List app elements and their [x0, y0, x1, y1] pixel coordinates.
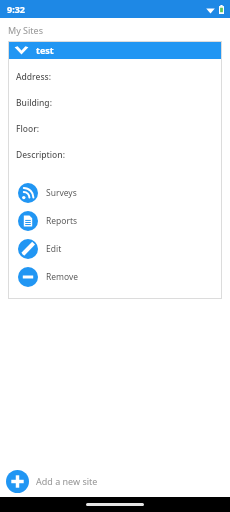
staticText: Reports [46, 215, 78, 227]
staticText: 9:32 [7, 3, 25, 15]
staticText: Remove [46, 271, 79, 283]
staticText: Surveys [46, 187, 77, 199]
button[interactable]: Add a new site [0, 465, 230, 497]
staticText: Edit [46, 243, 62, 255]
staticText: Description: [16, 149, 65, 161]
button[interactable]: Surveys [8, 179, 222, 207]
staticText: Add a new site [36, 475, 98, 487]
staticText: Floor: [16, 123, 40, 135]
button[interactable]: test [8, 41, 222, 59]
staticText: Address: [16, 71, 51, 83]
other: Add a new site [6, 470, 29, 493]
staticText: test [36, 44, 54, 56]
button[interactable]: Remove [8, 263, 222, 291]
staticText: My Sites [8, 24, 43, 36]
button[interactable]: Reports [8, 207, 222, 235]
button[interactable]: Edit [8, 235, 222, 263]
staticText: Building: [16, 97, 52, 109]
